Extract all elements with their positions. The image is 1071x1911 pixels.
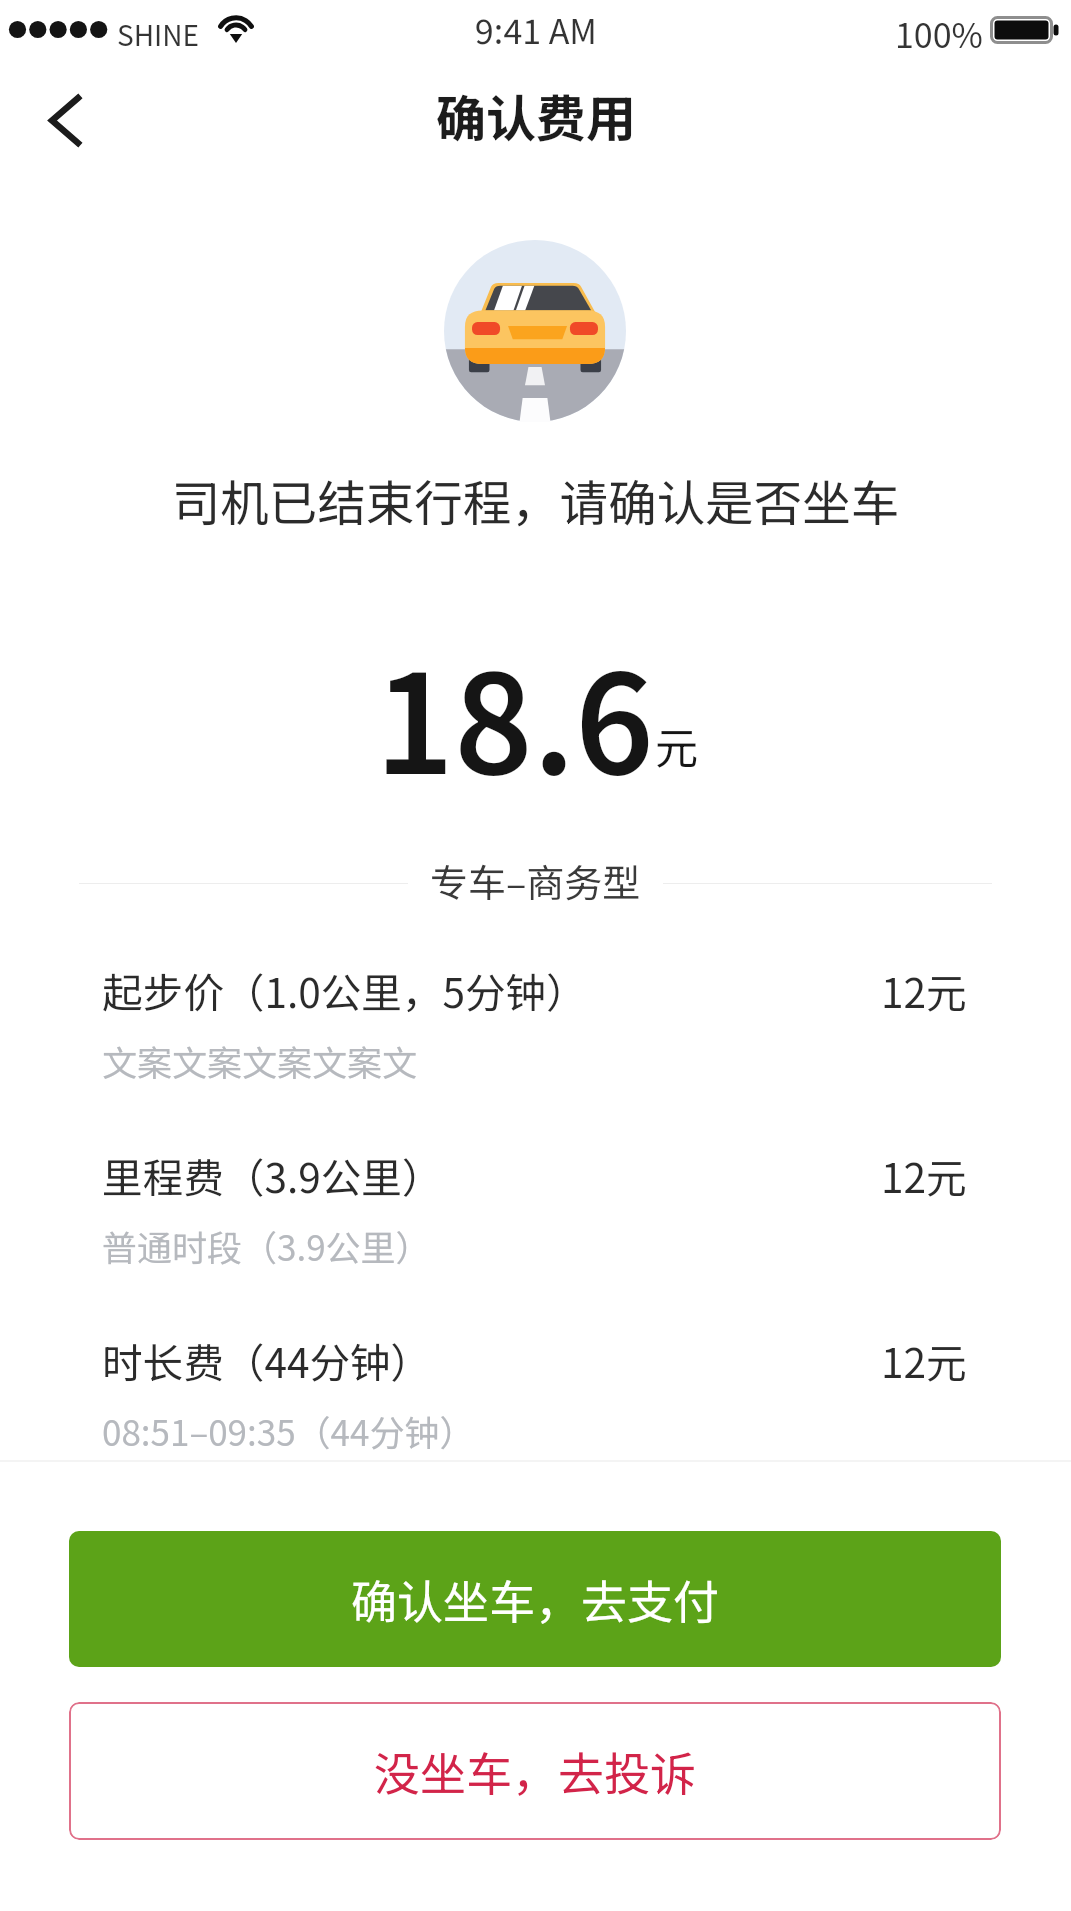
button[interactable]: 没坐车，去投诉 [69,1702,1001,1840]
staticText: 08:51–09:35（44分钟） [102,1405,475,1456]
staticText: 司机已结束行程，请确认是否坐车 [0,465,1071,535]
staticText: 起步价（1.0公里，5分钟） [102,961,587,1020]
staticText: 文案文案文案文案文 [102,1035,418,1086]
staticText: 100% [895,9,983,58]
staticText: 12元 [881,1146,967,1205]
staticText: 12元 [881,961,967,1020]
staticText: 确认费用 [436,79,636,151]
staticText: 12元 [881,1331,967,1390]
staticText: 9:41 AM [475,5,597,54]
button[interactable]: Back [10,69,114,173]
staticText: 18.6 [375,616,654,813]
staticText: 时长费（44分钟） [102,1331,432,1390]
staticText: 确认坐车，去支付 [351,1566,719,1633]
staticText: 专车–商务型 [430,853,641,908]
button[interactable]: 确认坐车，去支付 [69,1531,1001,1667]
staticText: 里程费（3.9公里） [102,1146,443,1205]
staticText: 元 [655,714,698,776]
staticText: 普通时段（3.9公里） [102,1220,431,1271]
staticText: 没坐车，去投诉 [374,1738,696,1805]
staticText: SHINE [117,14,200,55]
